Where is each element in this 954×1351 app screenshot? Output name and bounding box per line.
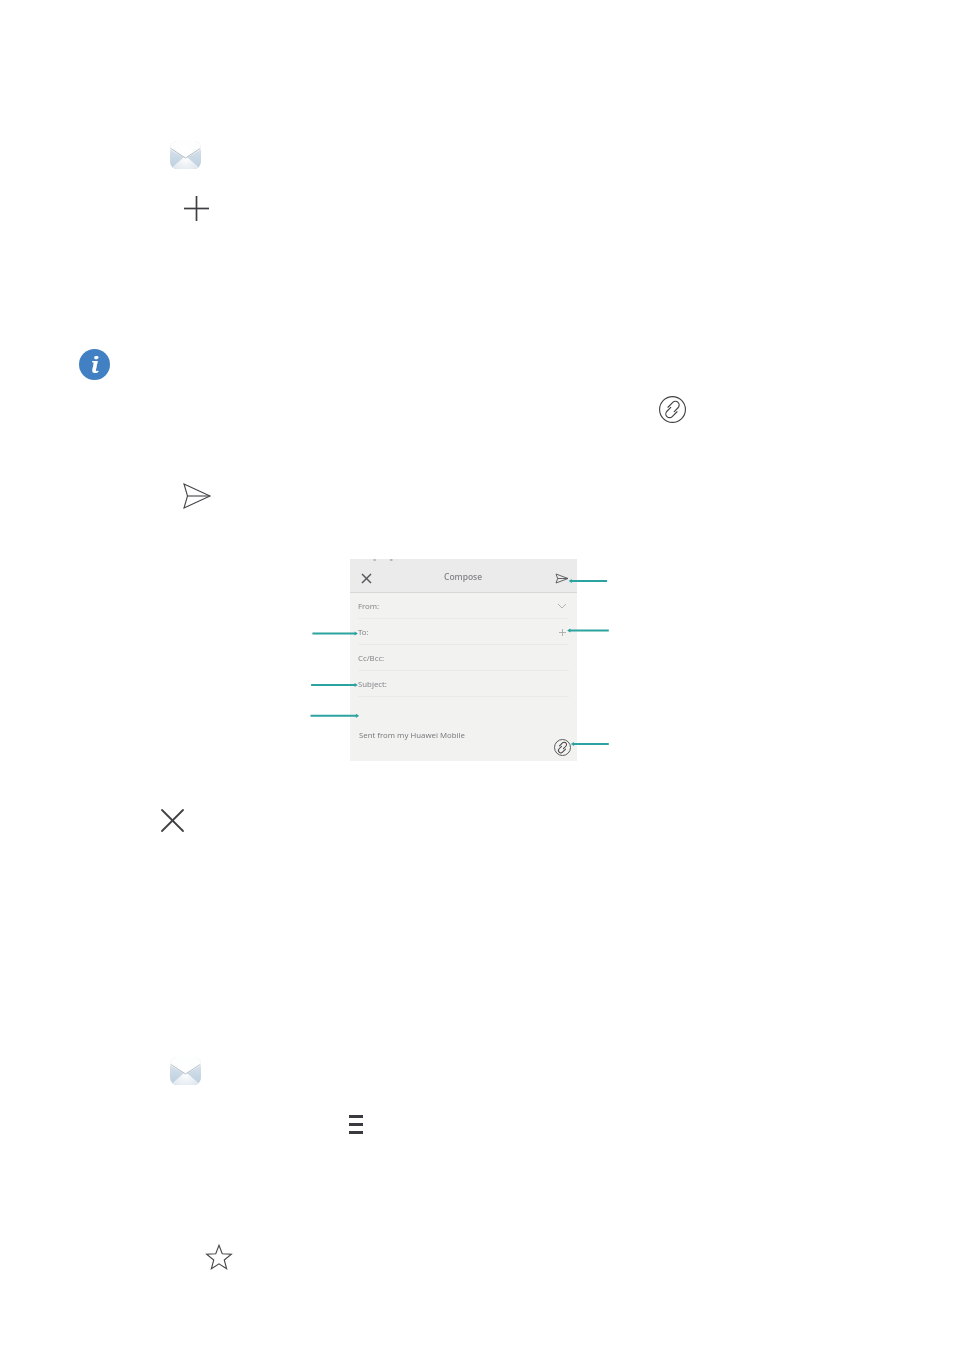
staticText: Compose	[444, 571, 483, 583]
button[interactable]: Close	[162, 810, 183, 831]
button[interactable]: Subject:	[350, 671, 577, 697]
button[interactable]: Send	[184, 484, 210, 508]
staticText: Cc/Bcc:	[358, 653, 385, 664]
staticText: Subject:	[358, 679, 387, 690]
button[interactable]: Cc/Bcc:	[350, 645, 577, 671]
button[interactable]: Attach file	[554, 739, 571, 756]
staticText: To:	[358, 627, 369, 638]
button[interactable]: Email app icon	[170, 141, 201, 169]
button[interactable]: To:	[350, 619, 577, 645]
button[interactable]: Send email	[556, 574, 568, 583]
button[interactable]: New email	[184, 196, 209, 221]
button[interactable]: Add attachment	[659, 396, 686, 423]
button[interactable]: Discard	[362, 574, 371, 583]
staticText: From:	[358, 601, 380, 612]
button[interactable]: Menu	[349, 1115, 363, 1134]
button[interactable]: Information	[79, 349, 110, 380]
staticText: i	[91, 349, 99, 379]
staticText: Sent from my Huawei Mobile	[359, 730, 465, 741]
button[interactable]: Favourite	[206, 1245, 232, 1271]
button[interactable]: Email app icon	[170, 1057, 201, 1085]
button[interactable]: From:	[350, 593, 577, 619]
